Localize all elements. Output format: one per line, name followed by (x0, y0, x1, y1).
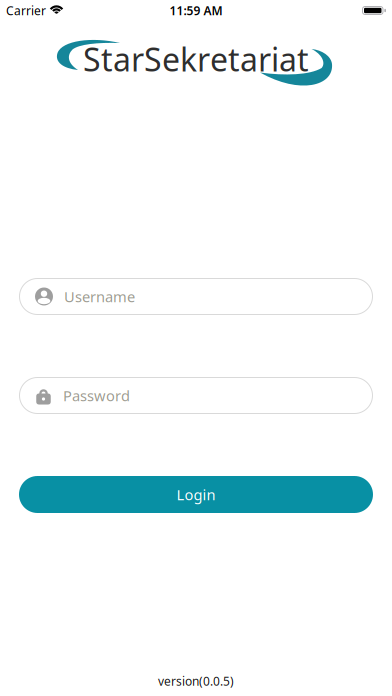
staticText: Password (63, 386, 130, 405)
staticText: 11:59 AM (169, 2, 222, 18)
textField[interactable]: Username (64, 287, 361, 306)
staticText: Carrier (6, 2, 46, 18)
staticText: StarSekretariat (83, 38, 309, 80)
secureTextField[interactable]: Password (63, 386, 361, 405)
staticText: Username (64, 287, 135, 306)
staticText: Login (176, 485, 215, 504)
staticText: version(0.0.5) (158, 673, 234, 689)
button[interactable]: Login (19, 476, 373, 513)
